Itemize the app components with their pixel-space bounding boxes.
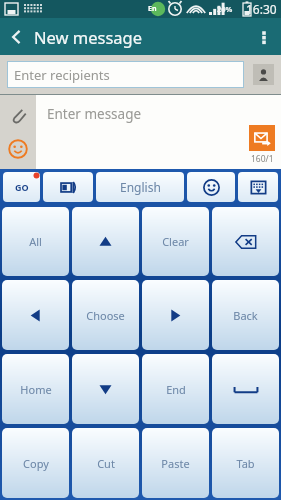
staticText: English	[120, 179, 161, 195]
staticText: All	[29, 234, 42, 249]
button[interactable]: All	[2, 207, 69, 276]
staticText: Copy	[23, 456, 49, 471]
button[interactable]: Left	[2, 280, 69, 350]
staticText: Paste	[161, 456, 190, 471]
staticText: New message	[34, 26, 143, 48]
staticText: Clear	[162, 234, 189, 249]
button[interactable]: Back	[212, 280, 279, 350]
button[interactable]: English	[96, 172, 184, 202]
staticText: Cut	[97, 456, 115, 471]
button[interactable]: Right	[142, 280, 209, 350]
button[interactable]: Add contact	[253, 64, 274, 85]
button[interactable]: Attach	[3, 100, 33, 130]
staticText: 160/1	[251, 153, 274, 165]
staticText: GO	[15, 181, 29, 193]
button[interactable]: Emoji	[187, 172, 235, 202]
staticText: Choose	[86, 308, 125, 323]
button[interactable]: Emoji	[3, 134, 33, 164]
button[interactable]: Enter message	[36, 95, 281, 169]
button[interactable]: Copy	[2, 428, 69, 498]
button[interactable]: Down	[72, 354, 139, 424]
staticText: Home	[20, 382, 52, 397]
button[interactable]: Send message	[249, 125, 275, 151]
button[interactable]: Clear	[142, 207, 209, 276]
button[interactable]: Delete	[212, 207, 279, 276]
button[interactable]: Enter recipients	[7, 61, 244, 88]
staticText: Tab	[236, 456, 255, 471]
button[interactable]: Tab	[212, 428, 279, 498]
button[interactable]: Back	[0, 20, 34, 54]
button[interactable]: Up	[72, 207, 139, 276]
button[interactable]: Space	[212, 354, 279, 424]
staticText: 16:30	[246, 1, 277, 17]
button[interactable]: Home	[2, 354, 69, 424]
button[interactable]: Hide keyboard	[238, 172, 278, 202]
staticText: 26%	[217, 4, 233, 14]
staticText: End	[166, 382, 186, 397]
button[interactable]: GO	[3, 172, 40, 202]
button[interactable]: Choose	[72, 280, 139, 350]
button[interactable]: Paste	[142, 428, 209, 498]
staticText: Enter recipients	[14, 66, 110, 84]
button[interactable]: End	[142, 354, 209, 424]
button[interactable]: Cut	[72, 428, 139, 498]
button[interactable]: More options	[247, 20, 281, 54]
staticText: Enter message	[47, 105, 142, 123]
staticText: Back	[233, 308, 258, 323]
staticText: En	[148, 4, 157, 14]
button[interactable]: Layout	[43, 172, 93, 202]
